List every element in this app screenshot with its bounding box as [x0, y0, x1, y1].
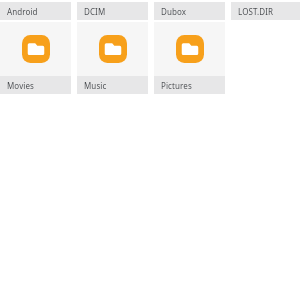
- staticText: Pictures: [161, 80, 192, 91]
- button[interactable]: LOST.DIR: [231, 2, 300, 20]
- staticText: Android: [7, 6, 38, 17]
- button[interactable]: Android: [0, 2, 71, 20]
- other: Folder Pictures: [176, 35, 204, 63]
- button[interactable]: Folder Movies: [0, 22, 71, 94]
- staticText: LOST.DIR: [238, 6, 274, 17]
- other: Folder Music: [99, 35, 127, 63]
- staticText: DCIM: [84, 6, 106, 17]
- button[interactable]: DCIM: [77, 2, 148, 20]
- staticText: Movies: [7, 80, 35, 91]
- button[interactable]: Folder Music: [77, 22, 148, 94]
- staticText: Music: [84, 80, 107, 91]
- button[interactable]: Dubox: [154, 2, 225, 20]
- staticText: Dubox: [161, 6, 187, 17]
- other: Folder Movies: [22, 35, 50, 63]
- button[interactable]: Folder Pictures: [154, 22, 225, 94]
